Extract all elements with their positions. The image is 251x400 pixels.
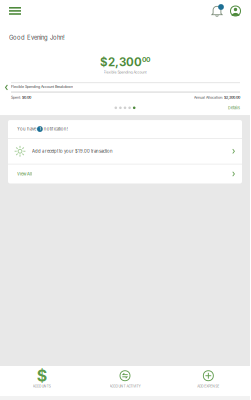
- staticText: $2,300: [100, 55, 142, 69]
- staticText: Annual Allocation:: [194, 95, 224, 100]
- staticText: notification!: [43, 126, 68, 132]
- button[interactable]: View All: [8, 164, 242, 183]
- button[interactable]: $: [0, 366, 83, 396]
- button[interactable]: Notifications: [207, 0, 227, 21]
- staticText: Details: [228, 105, 240, 110]
- staticText: ADD EXPENSE: [197, 384, 219, 388]
- staticText: View All: [17, 171, 32, 177]
- staticText: 1: [39, 127, 40, 131]
- button[interactable]: Details: [228, 104, 250, 111]
- staticText: You have: [17, 126, 37, 132]
- staticText: Spent:: [11, 95, 22, 100]
- button[interactable]: ADD EXPENSE: [167, 366, 250, 396]
- staticText: ACCOUNTS: [33, 384, 51, 388]
- button[interactable]: Profile: [227, 0, 250, 21]
- staticText: $0.00: [22, 95, 31, 100]
- staticText: Flexible Spending Account: [103, 70, 146, 74]
- button[interactable]: Menu: [0, 1, 27, 21]
- button[interactable]: ACCOUNT ACTIVITY: [83, 366, 167, 396]
- staticText: Flexible Spending Account Breakdown: [11, 85, 73, 89]
- staticText: Add a receipt to your $19.00 transaction: [32, 149, 113, 154]
- button[interactable]: Add a receipt to your $19.00 transaction: [8, 139, 242, 164]
- staticText: Good Evening John!: [9, 34, 65, 41]
- staticText: 00: [142, 56, 150, 64]
- staticText: $: [37, 366, 47, 385]
- staticText: $2,300.00: [224, 95, 240, 100]
- staticText: ACCOUNT ACTIVITY: [109, 384, 140, 388]
